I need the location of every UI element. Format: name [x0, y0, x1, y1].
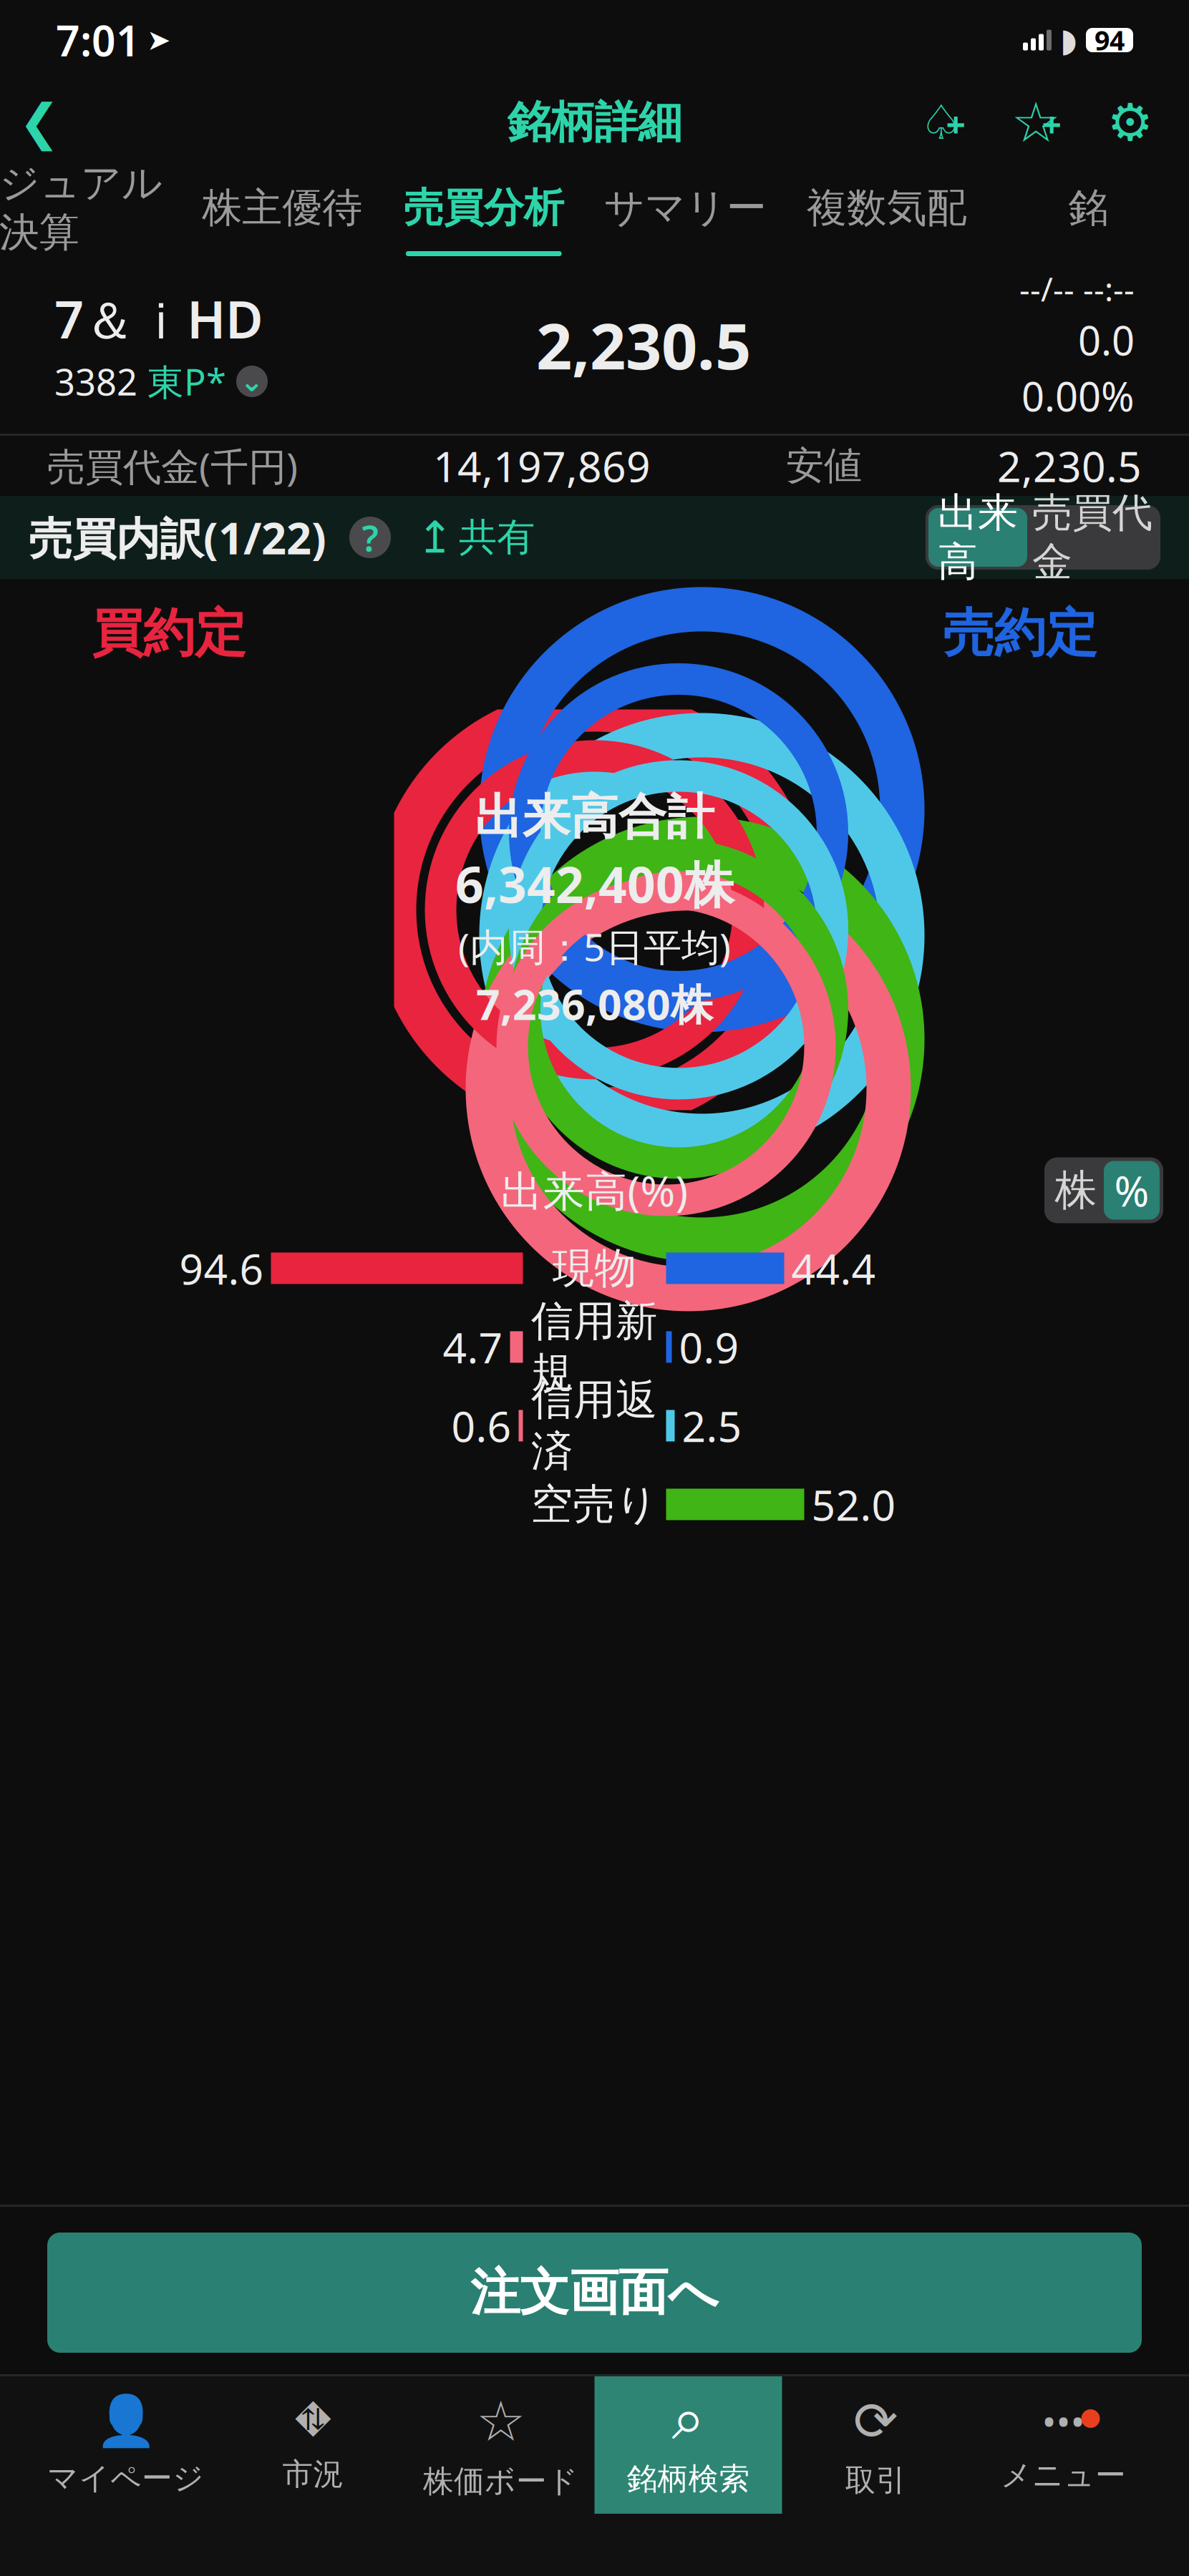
staticText: ◗: [1060, 22, 1077, 59]
staticText: 0.00%: [1021, 369, 1135, 423]
staticText: 買約定: [92, 602, 246, 665]
button[interactable]: 売買代金: [1027, 508, 1158, 567]
staticText: 94.6: [179, 1240, 264, 1296]
staticText: 銘: [1068, 183, 1108, 232]
staticText: 東P*: [147, 357, 226, 405]
button[interactable]: ⌕: [594, 2376, 782, 2514]
button[interactable]: 戻る: [0, 83, 79, 162]
staticText: 売買分析: [404, 183, 564, 232]
button[interactable]: 銘: [987, 165, 1189, 256]
button[interactable]: 👤: [32, 2376, 219, 2514]
staticText: 株主優待: [202, 183, 362, 232]
button[interactable]: 複数気配: [786, 165, 987, 256]
staticText: 0.0: [1078, 313, 1135, 366]
staticText: 信用新規: [531, 1295, 658, 1399]
staticText: +: [1042, 101, 1061, 147]
staticText: ジュアル決算: [0, 159, 162, 257]
staticText: --/-- --:--: [1019, 267, 1135, 310]
staticText: 7＆ｉHD: [54, 284, 263, 353]
staticText: ⛖: [293, 2397, 333, 2445]
button[interactable]: 株主優待: [181, 165, 383, 256]
staticText: ❮: [19, 94, 60, 151]
staticText: 売買代金: [1032, 488, 1152, 587]
staticText: 7:01: [56, 12, 140, 68]
button[interactable]: 市場を選択: [236, 366, 268, 397]
staticText: 銘柄詳細: [507, 95, 682, 149]
button[interactable]: 設定: [1097, 87, 1163, 158]
staticText: 信用返済: [531, 1374, 658, 1477]
staticText: 安値: [786, 442, 862, 489]
staticText: ⌕: [672, 2392, 705, 2450]
staticText: 取引: [845, 2462, 907, 2499]
staticText: ➤: [147, 24, 171, 56]
button[interactable]: 株: [1048, 1161, 1104, 1220]
staticText: •••: [1042, 2396, 1085, 2447]
button[interactable]: ヘルプ: [349, 517, 391, 558]
staticText: 2,230.5: [536, 303, 751, 387]
button[interactable]: %: [1104, 1161, 1160, 1220]
staticText: (内周：5日平均): [458, 921, 731, 972]
staticText: 売約定: [943, 602, 1097, 665]
button[interactable]: お気に入り追加: [1003, 87, 1069, 158]
staticText: 0.6: [451, 1398, 511, 1454]
button[interactable]: ジュアル決算: [0, 165, 181, 256]
staticText: 出来高: [938, 488, 1018, 587]
staticText: 複数気配: [807, 183, 967, 232]
staticText: 株価ボード: [423, 2463, 578, 2500]
staticText: 空売り: [531, 1479, 658, 1530]
staticText: 出来高(%): [501, 1162, 688, 1218]
staticText: サマリー: [604, 183, 767, 232]
staticText: 売買内訳(1/22): [29, 508, 326, 567]
button[interactable]: ☆: [407, 2376, 594, 2514]
staticText: ⚙: [1107, 93, 1154, 152]
staticText: ⟳: [853, 2391, 898, 2452]
button[interactable]: アラート追加: [908, 87, 974, 158]
button[interactable]: •••: [970, 2376, 1157, 2514]
button[interactable]: ⛖: [219, 2376, 407, 2514]
staticText: 出来高合計: [475, 788, 714, 847]
button[interactable]: ⟳: [782, 2376, 970, 2514]
staticText: 3382: [54, 357, 137, 405]
staticText: ☆: [1011, 91, 1061, 154]
staticText: 52.0: [811, 1477, 896, 1532]
staticText: ⌄: [240, 365, 264, 398]
staticText: 4.7: [443, 1319, 503, 1375]
button[interactable]: 売買分析: [383, 165, 584, 256]
staticText: 7,236,080株: [476, 976, 713, 1032]
staticText: %: [1114, 1162, 1149, 1218]
staticText: ♤: [920, 95, 963, 149]
staticText: 2,230.5: [997, 438, 1142, 494]
staticText: ↥: [417, 512, 453, 562]
staticText: 共有: [459, 514, 535, 561]
button[interactable]: ↥: [409, 509, 542, 566]
staticText: メニュー: [1001, 2457, 1126, 2494]
staticText: マイページ: [47, 2460, 204, 2497]
staticText: 銘柄検索: [627, 2460, 750, 2498]
button[interactable]: 出来高: [928, 508, 1027, 567]
staticText: 14,197,869: [433, 438, 651, 494]
staticText: 2.5: [682, 1398, 742, 1454]
button[interactable]: 注文画面へ: [47, 2233, 1142, 2353]
staticText: 市況: [282, 2456, 344, 2493]
staticText: 94: [1095, 22, 1125, 58]
button[interactable]: サマリー: [584, 165, 786, 256]
staticText: 注文画面へ: [470, 2262, 719, 2323]
staticText: 現物: [552, 1242, 637, 1294]
staticText: 6,342,400株: [455, 851, 734, 917]
staticText: 👤: [95, 2393, 156, 2450]
staticText: 株: [1055, 1164, 1097, 1216]
staticText: 0.9: [679, 1319, 739, 1375]
staticText: 売買代金(千円): [47, 440, 298, 491]
staticText: ?: [362, 513, 378, 561]
staticText: ☆: [476, 2390, 525, 2453]
staticText: 44.4: [791, 1240, 876, 1296]
staticText: +: [946, 101, 965, 147]
